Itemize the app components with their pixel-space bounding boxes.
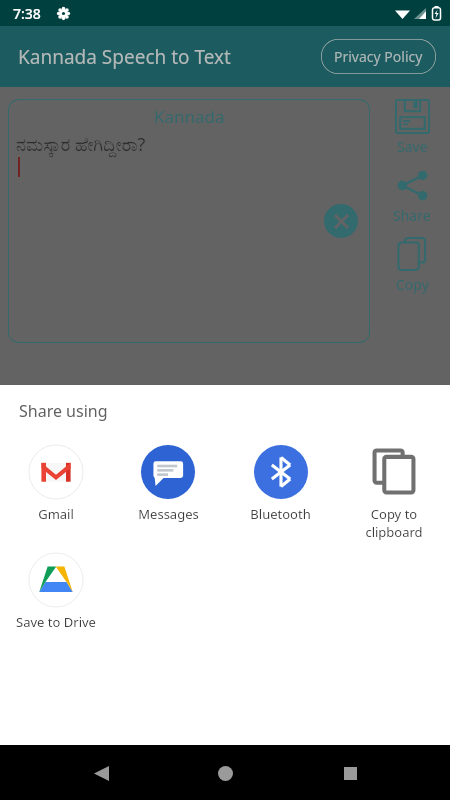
- staticText: Copy to clipboard: [365, 505, 423, 541]
- button[interactable]: Clear text: [324, 204, 358, 238]
- staticText: Bluetooth: [250, 505, 311, 523]
- staticText: Share using: [19, 400, 108, 422]
- button[interactable]: Gmail: [0, 443, 112, 525]
- button[interactable]: Home: [201, 749, 249, 797]
- button[interactable]: Save to Drive: [0, 551, 112, 633]
- staticText: Messages: [138, 505, 199, 523]
- button[interactable]: Recents: [326, 749, 374, 797]
- button[interactable]: Privacy Policy: [321, 39, 436, 74]
- button[interactable]: Bluetooth: [224, 443, 337, 525]
- button[interactable]: Share: [389, 168, 435, 237]
- staticText: Save: [397, 137, 428, 156]
- button[interactable]: Kannada: [8, 99, 370, 343]
- button[interactable]: Back: [77, 749, 125, 797]
- staticText: Kannada Speech to Text: [18, 44, 231, 70]
- button[interactable]: Save: [391, 99, 434, 168]
- staticText: 7:38: [13, 4, 41, 23]
- button[interactable]: Copy: [391, 237, 434, 306]
- button[interactable]: Messages: [112, 443, 224, 525]
- button[interactable]: Copy to clipboard: [337, 443, 450, 543]
- staticText: Privacy Policy: [334, 47, 423, 66]
- staticText: Gmail: [38, 505, 74, 523]
- staticText: ನಮಸ್ಕಾರ ಹೇಗಿದ್ದೀರಾ?: [16, 132, 146, 157]
- staticText: TRANSLATE: [50, 776, 125, 795]
- button[interactable]: SHOW SAVED TEXT: [290, 766, 436, 800]
- staticText: SHOW SAVED TEXT: [301, 776, 425, 795]
- button[interactable]: TRANSLATE: [14, 766, 160, 800]
- staticText: Share: [393, 206, 431, 225]
- staticText: Save to Drive: [16, 613, 96, 631]
- staticText: Copy: [396, 275, 429, 294]
- staticText: Kannada: [154, 105, 225, 128]
